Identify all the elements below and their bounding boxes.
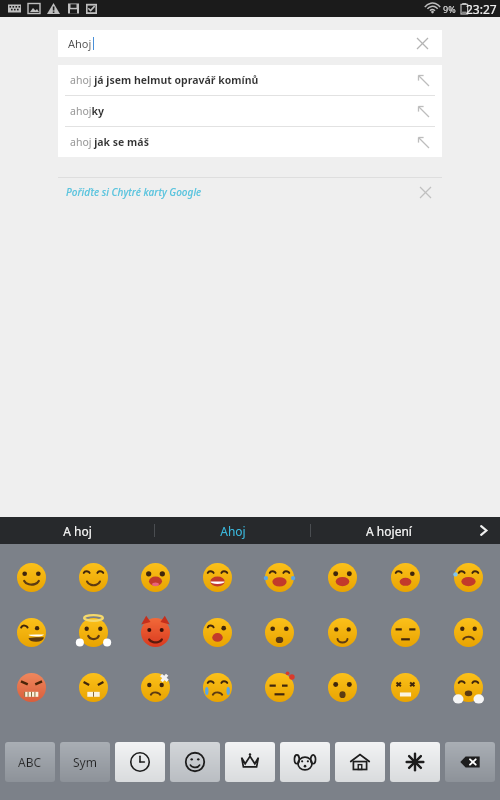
staticText: 9% bbox=[443, 3, 456, 15]
button[interactable]: Emoji 8 bbox=[437, 550, 500, 605]
staticText: ahoj jak se máš bbox=[70, 135, 149, 149]
button[interactable]: Places bbox=[335, 742, 385, 782]
staticText: Ahoj bbox=[220, 523, 246, 539]
button[interactable]: Emoji 22 bbox=[311, 660, 374, 715]
button[interactable]: ahoj já jsem helmut opravář komínů bbox=[58, 65, 442, 95]
button[interactable]: Symbols bbox=[390, 742, 440, 782]
staticText: ahojky bbox=[70, 104, 104, 118]
staticText: Sym bbox=[73, 754, 97, 770]
button[interactable]: ahojky bbox=[58, 96, 442, 126]
button[interactable]: Emoji 12 bbox=[186, 605, 248, 660]
button[interactable]: Emoji 5 bbox=[248, 550, 311, 605]
button[interactable]: Emoji 13 bbox=[248, 605, 311, 660]
button[interactable]: Emoji 3 bbox=[124, 550, 186, 605]
button[interactable]: Emoji 18 bbox=[62, 660, 124, 715]
button[interactable]: Recent bbox=[115, 742, 165, 782]
button[interactable]: Emoji 1 bbox=[0, 550, 62, 605]
button[interactable]: Clear search bbox=[409, 30, 436, 57]
button[interactable]: Ahoj bbox=[58, 30, 442, 57]
button[interactable]: A hoj bbox=[0, 517, 154, 544]
button[interactable]: A hojení bbox=[311, 517, 466, 544]
button[interactable]: Emoji 7 bbox=[374, 550, 437, 605]
button[interactable]: Emoji 19 bbox=[124, 660, 186, 715]
button[interactable]: Emoji 17 bbox=[0, 660, 62, 715]
button[interactable]: Emoji 15 bbox=[374, 605, 437, 660]
button[interactable]: Emoji 24 bbox=[437, 660, 500, 715]
staticText: A hoj bbox=[63, 523, 92, 539]
button[interactable]: Animals bbox=[280, 742, 330, 782]
button[interactable]: Emoji 14 bbox=[311, 605, 374, 660]
button[interactable]: Nature bbox=[225, 742, 275, 782]
staticText: Ahoj bbox=[68, 36, 92, 51]
button[interactable]: Dismiss bbox=[412, 179, 438, 205]
button[interactable]: Emoji 20 bbox=[186, 660, 248, 715]
button[interactable]: Emoji 2 bbox=[62, 550, 124, 605]
button[interactable]: Ahoj bbox=[155, 517, 310, 544]
button[interactable]: ahoj jak se máš bbox=[58, 127, 442, 157]
button[interactable]: Sym bbox=[60, 742, 110, 782]
button[interactable]: Insert suggestion bbox=[408, 127, 438, 157]
staticText: A hojení bbox=[366, 523, 412, 539]
staticText: ahoj já jsem helmut opravář komínů bbox=[70, 73, 259, 87]
staticText: 23:27 bbox=[466, 1, 497, 17]
button[interactable]: Backspace bbox=[445, 742, 495, 782]
button[interactable]: Emoji 23 bbox=[374, 660, 437, 715]
staticText: Pořiďte si Chytré karty Google bbox=[66, 185, 202, 199]
button[interactable]: Insert suggestion bbox=[408, 65, 438, 95]
button[interactable]: Emoji 11 bbox=[124, 605, 186, 660]
button[interactable]: ABC bbox=[5, 742, 55, 782]
button[interactable]: Insert suggestion bbox=[408, 96, 438, 126]
button[interactable]: Emoji 16 bbox=[437, 605, 500, 660]
button[interactable]: Emoji bbox=[170, 742, 220, 782]
button[interactable]: Emoji 21 bbox=[248, 660, 311, 715]
button[interactable]: Emoji 9 bbox=[0, 605, 62, 660]
button[interactable]: Emoji 10 bbox=[62, 605, 124, 660]
button[interactable]: Emoji 6 bbox=[311, 550, 374, 605]
button[interactable]: More suggestions bbox=[466, 517, 500, 544]
button[interactable]: Pořiďte si Chytré karty Google bbox=[58, 178, 442, 206]
button[interactable]: Emoji 4 bbox=[186, 550, 248, 605]
staticText: ABC bbox=[18, 754, 42, 770]
